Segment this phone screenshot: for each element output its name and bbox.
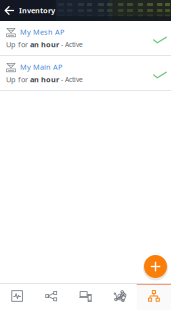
staticText: - Active xyxy=(59,75,83,84)
staticText: Up for xyxy=(6,39,30,49)
button[interactable]: Add xyxy=(142,253,169,280)
staticText: Up for xyxy=(6,74,30,84)
button[interactable]: Monitoring xyxy=(0,283,34,310)
button[interactable]: Inventory xyxy=(137,283,171,310)
staticText: - Active xyxy=(59,40,83,49)
staticText: My Mesh AP xyxy=(20,27,64,37)
staticText: My Main AP xyxy=(20,62,62,72)
button[interactable]: My Main AP xyxy=(0,56,171,90)
staticText: an hour xyxy=(30,39,59,49)
button[interactable]: Clients xyxy=(68,283,103,310)
staticText: Inventory xyxy=(19,5,55,15)
button[interactable]: Network xyxy=(103,283,137,310)
button[interactable]: Back xyxy=(0,0,15,20)
button[interactable]: My Mesh AP xyxy=(0,21,171,55)
staticText: an hour xyxy=(30,74,59,84)
button[interactable]: Topology xyxy=(34,283,68,310)
